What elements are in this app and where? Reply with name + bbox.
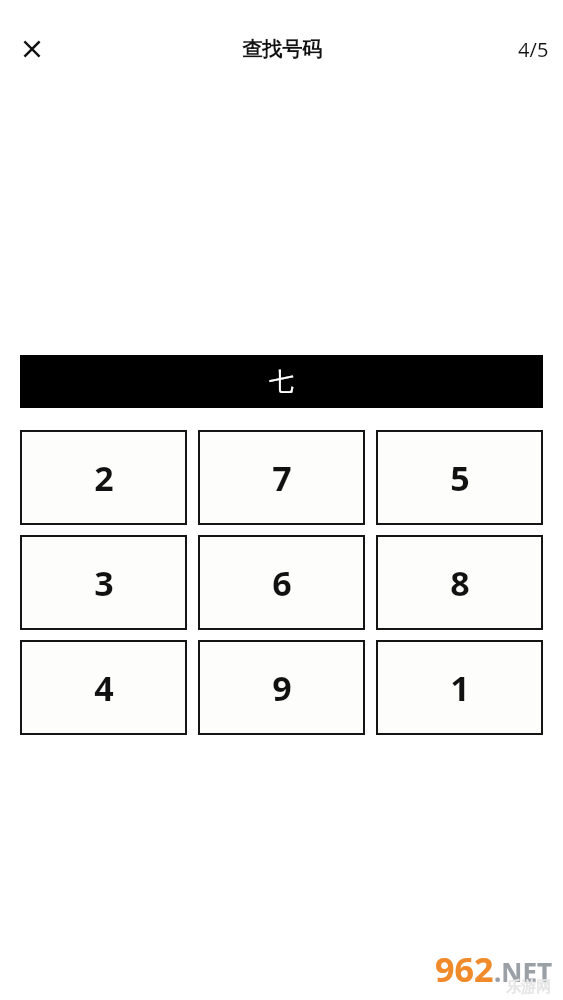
staticText: 1 (450, 665, 470, 711)
button[interactable]: 4 (20, 640, 187, 735)
staticText: .NET (494, 954, 553, 989)
staticText: 8 (450, 560, 470, 606)
button[interactable]: 1 (376, 640, 543, 735)
staticText: 4 (94, 665, 114, 711)
button[interactable]: 2 (20, 430, 187, 525)
button[interactable]: 3 (20, 535, 187, 630)
staticText: 7 (272, 455, 292, 501)
staticText: 乐游网 (506, 978, 551, 997)
button[interactable]: 七 (20, 355, 543, 408)
button[interactable]: 5 (376, 430, 543, 525)
button[interactable]: Close (12, 29, 52, 69)
staticText: 2 (94, 455, 114, 501)
staticText: 9 (272, 665, 292, 711)
button[interactable]: 9 (198, 640, 365, 735)
staticText: 3 (94, 560, 114, 606)
staticText: 962 (435, 946, 494, 992)
button[interactable]: 7 (198, 430, 365, 525)
staticText: 5 (450, 455, 470, 501)
staticText: 七 (269, 366, 294, 397)
staticText: 查找号码 (242, 37, 322, 62)
button[interactable]: 6 (198, 535, 365, 630)
staticText: 4/5 (518, 36, 549, 63)
button[interactable]: 8 (376, 535, 543, 630)
staticText: 6 (272, 560, 292, 606)
